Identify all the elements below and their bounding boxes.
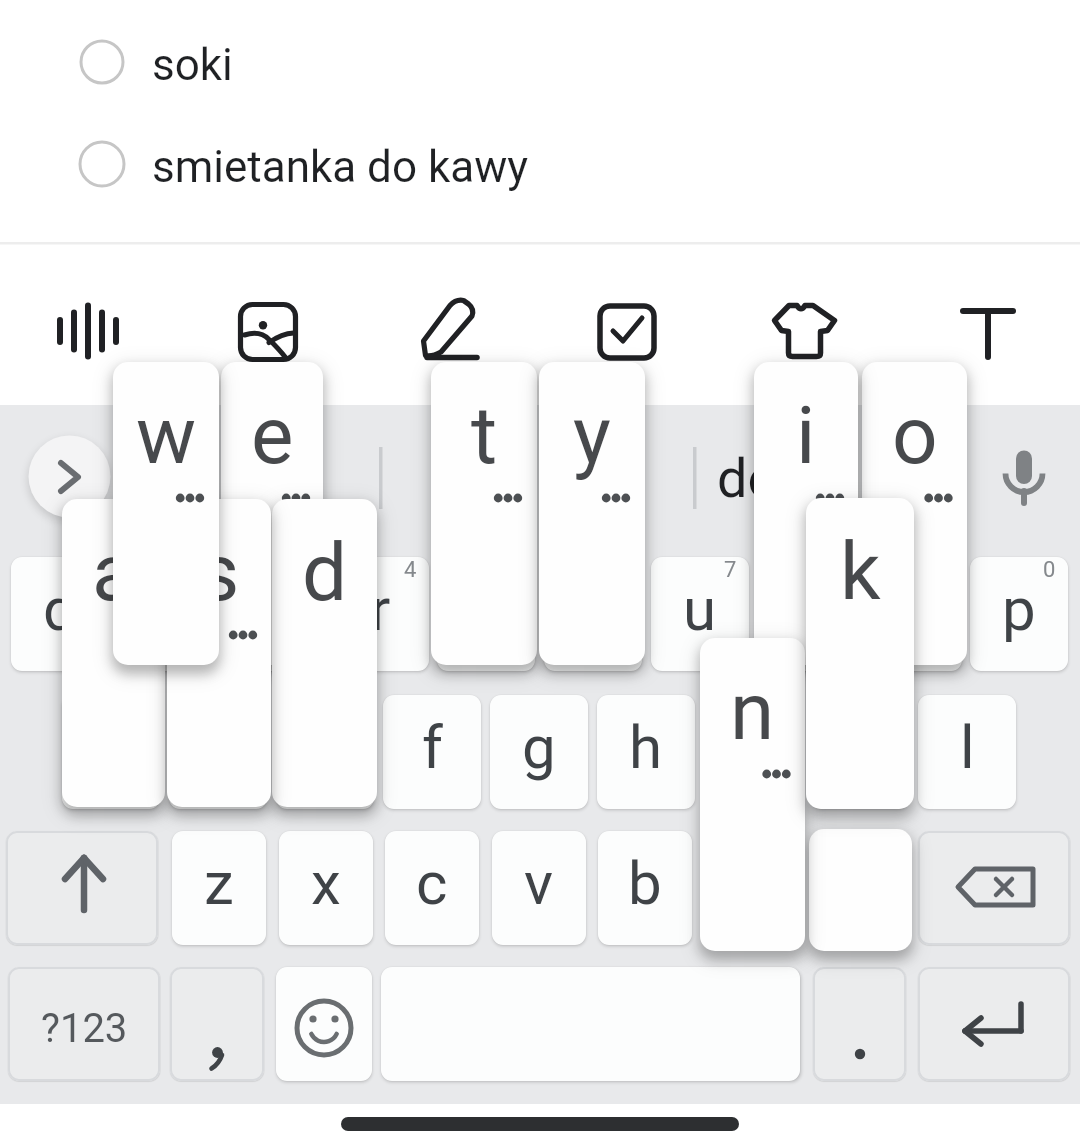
staticText: smietanka do kawy (152, 141, 529, 193)
button[interactable]: e (224, 557, 322, 671)
button[interactable] (170, 967, 264, 1081)
button[interactable] (918, 831, 1070, 945)
button[interactable] (988, 442, 1060, 514)
button[interactable] (591, 295, 663, 367)
staticText: d (302, 526, 348, 620)
staticText: 4 (404, 557, 417, 583)
button[interactable] (952, 295, 1024, 367)
button[interactable]: q (11, 557, 109, 671)
staticText: i (796, 389, 816, 483)
button[interactable]: p (970, 557, 1068, 671)
button[interactable]: x (279, 831, 373, 945)
staticText: r (370, 574, 391, 644)
button[interactable]: d (276, 695, 374, 809)
button[interactable]: w (118, 557, 216, 671)
button[interactable] (28, 435, 111, 518)
button[interactable]: o (864, 557, 962, 671)
staticText: o (896, 574, 931, 644)
staticText: t (471, 389, 498, 483)
button[interactable]: k (806, 498, 914, 809)
button[interactable] (52, 295, 124, 367)
button[interactable]: a (62, 695, 160, 809)
staticText: e (251, 389, 294, 483)
button[interactable]: f (383, 695, 481, 809)
staticText: z (204, 848, 234, 918)
button[interactable]: a (62, 499, 165, 807)
button[interactable] (813, 967, 906, 1081)
staticText: n (730, 665, 775, 759)
staticText: w (136, 389, 197, 483)
button[interactable]: w (113, 362, 219, 665)
button[interactable]: z (172, 831, 266, 945)
button[interactable]: i (754, 362, 858, 665)
button[interactable]: o (862, 362, 967, 665)
button[interactable]: s (169, 695, 267, 809)
button[interactable]: t (437, 557, 535, 671)
button[interactable] (232, 295, 304, 367)
button[interactable] (770, 295, 842, 367)
button[interactable]: c (385, 831, 479, 945)
staticText: u (683, 574, 717, 644)
button[interactable]: e (221, 362, 323, 665)
staticText: o (892, 389, 938, 483)
staticText: x (311, 848, 341, 918)
staticText: s (198, 526, 240, 620)
button[interactable] (809, 829, 912, 951)
staticText: 0 (1043, 557, 1056, 583)
button[interactable]: n (700, 638, 805, 951)
button[interactable] (700, 430, 800, 526)
button[interactable]: d (272, 499, 377, 807)
staticText: 3 (297, 557, 310, 583)
staticText: b (628, 848, 662, 918)
button[interactable]: t (431, 362, 537, 665)
button[interactable] (413, 295, 485, 367)
button[interactable]: j (704, 695, 802, 809)
staticText: g (522, 712, 556, 782)
staticText: soki (152, 39, 233, 91)
staticText: k (840, 525, 881, 619)
staticText: c (416, 848, 448, 918)
button[interactable] (276, 967, 372, 1081)
button[interactable]: s (167, 499, 271, 807)
staticText: f (422, 712, 443, 782)
button[interactable]: b (598, 831, 692, 945)
button[interactable] (6, 831, 158, 945)
button[interactable]: y (544, 557, 642, 671)
button[interactable]: l (918, 695, 1016, 809)
button[interactable] (341, 1117, 739, 1131)
button[interactable]: i (757, 557, 855, 671)
button[interactable]: u (651, 557, 749, 671)
button[interactable]: v (492, 831, 586, 945)
button[interactable]: r (331, 557, 429, 671)
staticText: v (524, 848, 554, 918)
button[interactable]: h (597, 695, 695, 809)
button[interactable]: y (539, 362, 645, 665)
button[interactable] (0, 12, 1080, 112)
staticText: l (960, 712, 975, 782)
staticText: a (92, 526, 136, 620)
button[interactable]: ?123 (8, 967, 160, 1081)
button[interactable]: k (811, 695, 909, 809)
staticText: y (573, 389, 611, 483)
button[interactable] (0, 114, 1080, 214)
staticText: do (717, 447, 779, 510)
button[interactable]: g (490, 695, 588, 809)
staticText: q (43, 574, 78, 644)
staticText: e (257, 574, 289, 644)
button[interactable] (918, 967, 1070, 1081)
